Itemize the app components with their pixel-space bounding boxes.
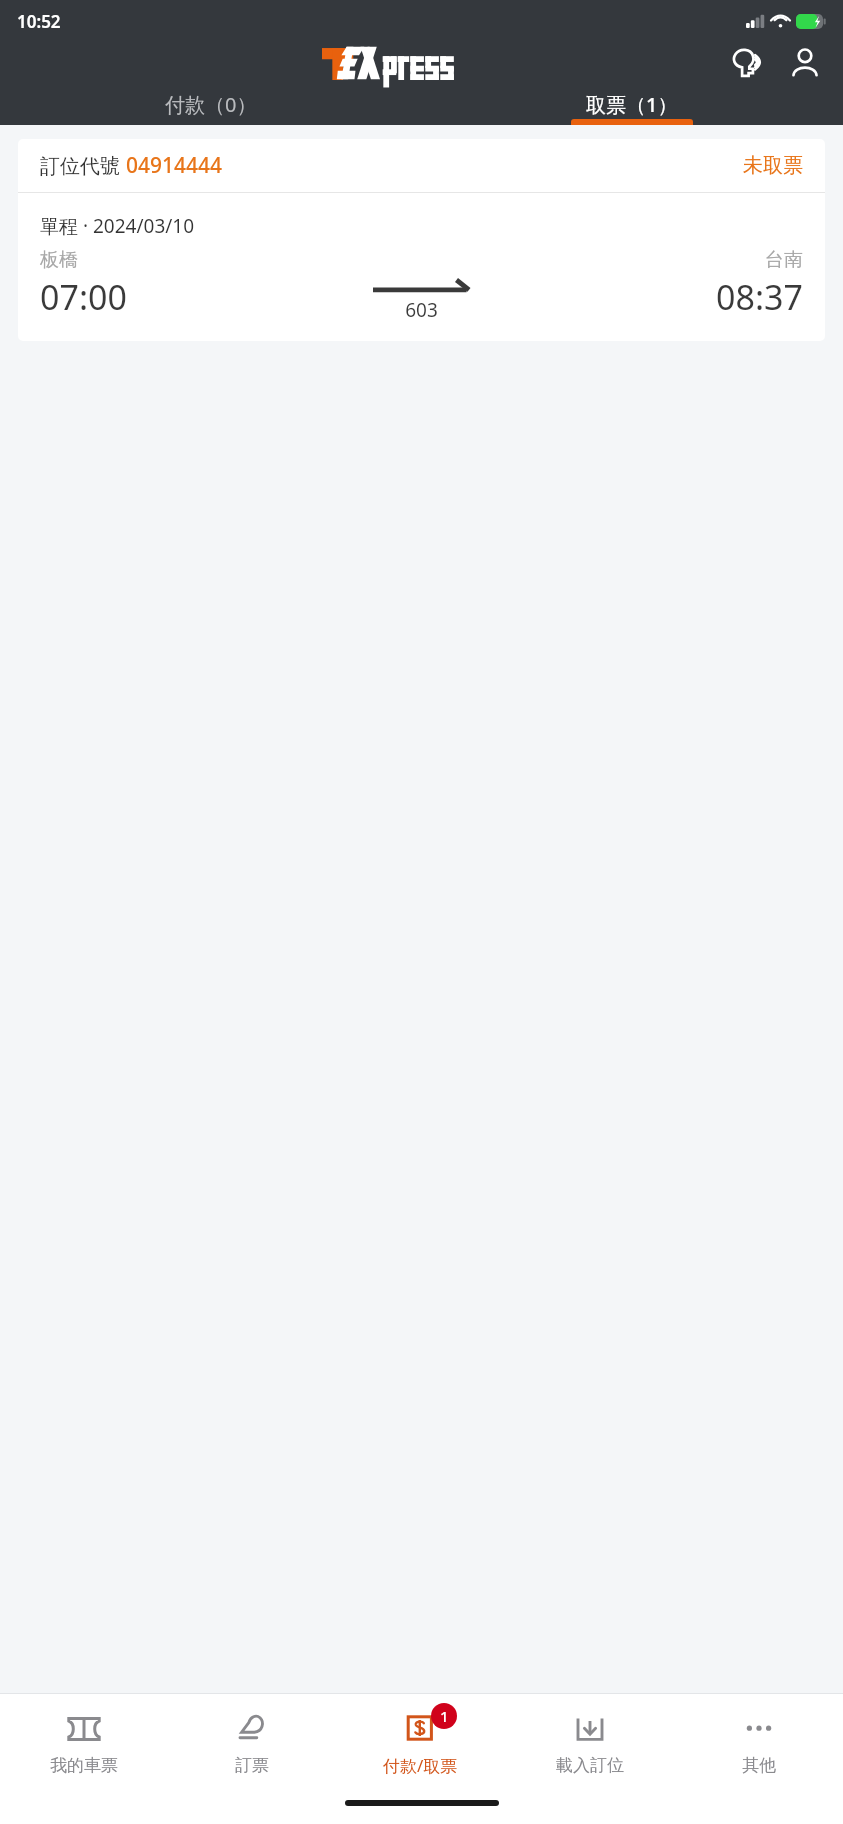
staticText: 付款/取票 (383, 1754, 458, 1777)
button[interactable]: 載入訂位 (505, 1694, 674, 1790)
button[interactable]: Voice assistant (721, 42, 769, 84)
staticText: 付款（0） (165, 91, 257, 118)
staticText: 未取票 (743, 153, 803, 178)
staticText: 訂位代號 (40, 152, 126, 179)
button[interactable]: 其他 (674, 1694, 843, 1790)
staticText: 我的車票 (50, 1755, 118, 1776)
staticText: 板橋 (40, 248, 78, 272)
staticText: 台南 (765, 248, 803, 272)
staticText: 單程 · 2024/03/10 (40, 213, 195, 239)
staticText: 訂票 (235, 1755, 269, 1776)
staticText: 1 (440, 1706, 449, 1726)
button[interactable]: 付款（0） (0, 84, 421, 125)
staticText: 載入訂位 (556, 1755, 624, 1776)
staticText: 603 (405, 297, 438, 323)
button[interactable]: 訂位代號 (18, 139, 825, 341)
staticText: 其他 (742, 1755, 776, 1776)
staticText: 04914444 (126, 151, 223, 180)
button[interactable]: 1 (336, 1694, 505, 1790)
staticText: 取票（1） (586, 91, 678, 118)
staticText: 08:37 (716, 274, 803, 320)
button[interactable]: 訂票 (168, 1694, 336, 1790)
staticText: 10:52 (17, 10, 61, 33)
staticText: 07:00 (40, 274, 127, 320)
button[interactable]: 取票（1） (421, 84, 843, 125)
button[interactable]: Account (781, 42, 829, 84)
button[interactable]: 我的車票 (0, 1694, 168, 1790)
